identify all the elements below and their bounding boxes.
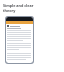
staticText: Simple and clear theory	[3, 3, 34, 13]
